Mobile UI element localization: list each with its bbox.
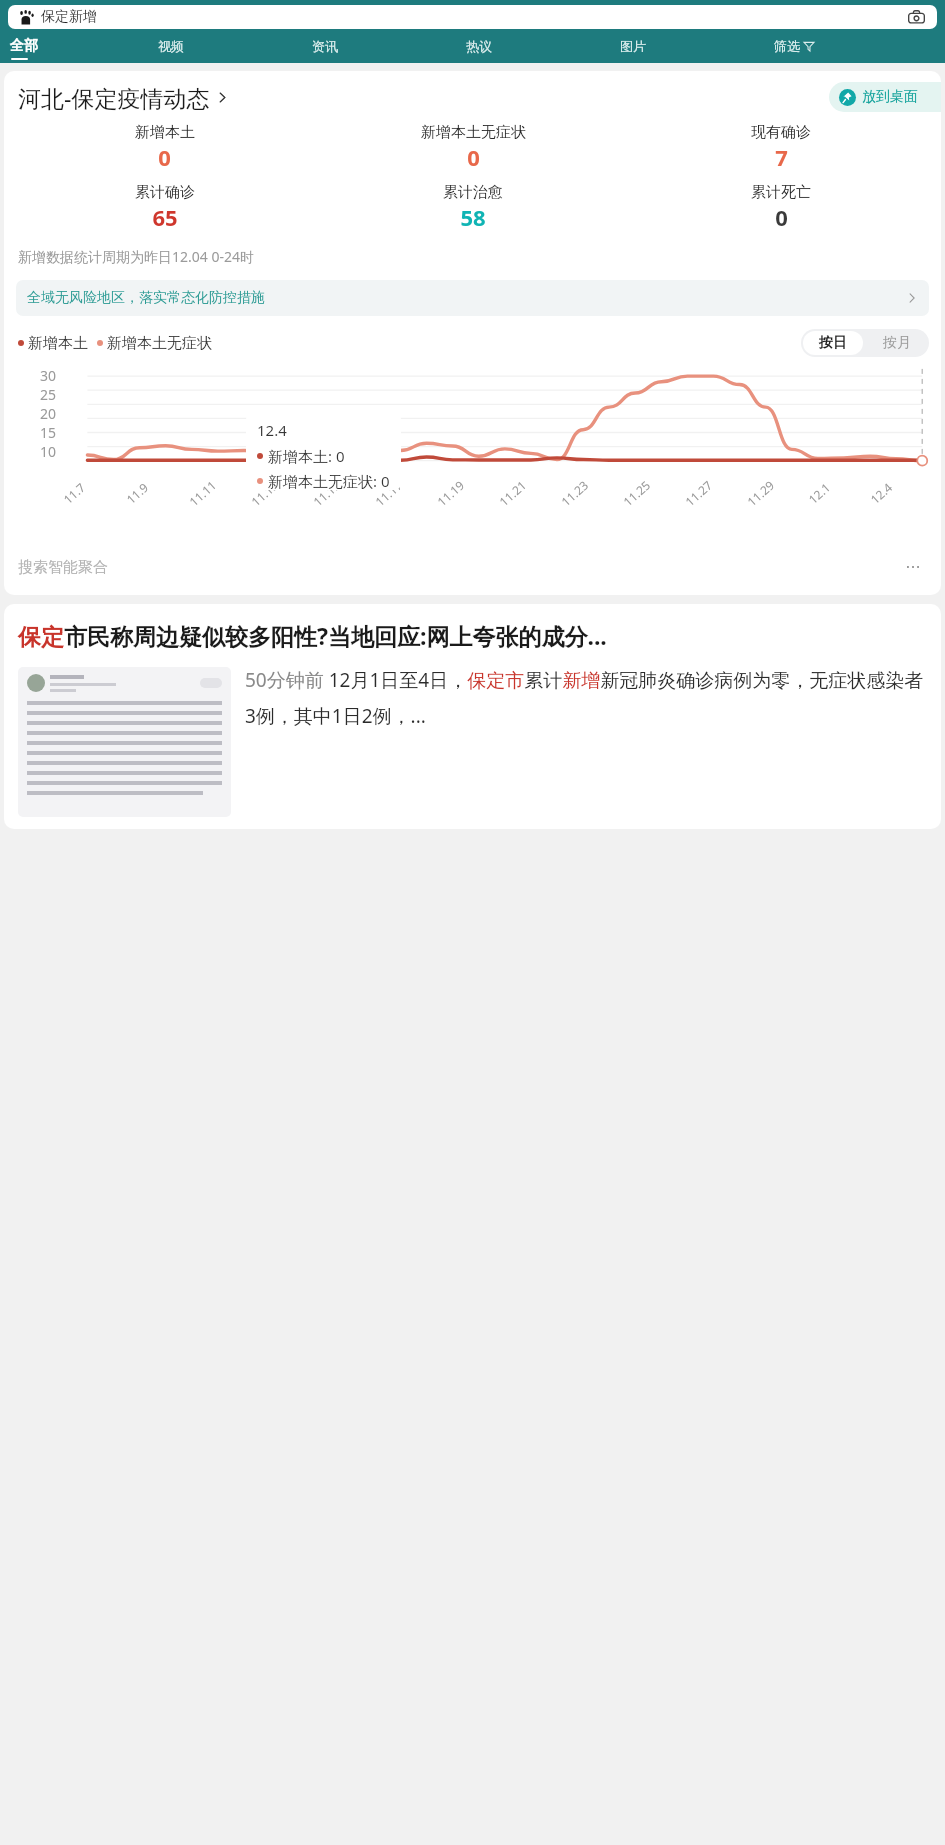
staticText: 58	[460, 202, 486, 232]
staticText: 全部	[10, 37, 38, 55]
button[interactable]: 图片	[620, 36, 774, 55]
staticText: 0	[467, 142, 480, 172]
staticText: 11.21	[496, 477, 529, 509]
staticText: 0	[775, 202, 788, 232]
staticText: 保定新增	[41, 8, 97, 26]
button[interactable]: More options	[901, 555, 925, 579]
button[interactable]: 保定市民称周边疑似较多阳性?当地回应:网上夸张的成分...	[4, 604, 941, 829]
staticText: 筛选	[774, 38, 800, 54]
staticText: 11.17	[372, 477, 405, 509]
button[interactable]: 全部	[10, 36, 158, 55]
button[interactable]: 河北-保定疫情动态	[18, 82, 229, 113]
staticText: 按日	[819, 334, 847, 352]
staticText: 新增本土	[135, 123, 195, 142]
staticText: 11.19	[434, 477, 467, 509]
staticText: 新增本土无症状	[421, 123, 526, 142]
staticText: 12.4	[867, 479, 895, 507]
staticText: 7	[775, 142, 788, 172]
staticText: 11.11	[186, 477, 219, 509]
staticText: 20	[24, 404, 56, 423]
staticText: 视频	[158, 38, 184, 54]
staticText: 新增本土无症状	[107, 334, 212, 353]
staticText: 累计死亡	[751, 183, 811, 202]
button[interactable]: 保定新增	[8, 5, 937, 29]
staticText: 新增本土: 0	[268, 446, 345, 466]
staticText: 30	[24, 366, 56, 385]
staticText: 15	[24, 423, 56, 442]
button[interactable]: Camera search	[906, 7, 926, 27]
staticText: 累计确诊	[135, 183, 195, 202]
staticText: 热议	[466, 38, 492, 54]
staticText: 放到桌面	[862, 88, 918, 106]
button[interactable]: 按日	[803, 331, 863, 355]
staticText: 11.9	[123, 479, 151, 507]
staticText: 11.15	[310, 477, 343, 509]
staticText: 25	[24, 385, 56, 404]
staticText: 10	[24, 442, 56, 461]
staticText: 12.4	[257, 420, 287, 440]
staticText: 资讯	[312, 38, 338, 54]
staticText: 搜索智能聚合	[18, 558, 108, 577]
staticText: 图片	[620, 38, 646, 54]
staticText: 11.25	[620, 477, 653, 509]
staticText: 11.7	[60, 479, 88, 507]
staticText: 50分钟前 12月1日至4日，保定市累计新增新冠肺炎确诊病例为零，无症状感染者3…	[245, 667, 927, 728]
button[interactable]: 放到桌面	[829, 82, 941, 112]
staticText: 累计治愈	[443, 183, 503, 202]
staticText: 现有确诊	[751, 123, 811, 142]
staticText: 全域无风险地区，落实常态化防控措施	[27, 289, 265, 307]
staticText: 保定市民称周边疑似较多阳性?当地回应:网上夸张的成分...	[18, 620, 607, 651]
staticText: 新增本土无症状: 0	[268, 471, 390, 490]
staticText: 11.29	[744, 477, 777, 509]
button[interactable]: 按月	[865, 329, 929, 357]
staticText: 65	[152, 202, 178, 232]
button[interactable]: 热议	[466, 36, 620, 55]
button[interactable]: 筛选	[774, 36, 936, 55]
staticText: 11.27	[682, 477, 715, 509]
staticText: 新增本土	[28, 334, 88, 353]
staticText: 河北-保定疫情动态	[18, 82, 210, 113]
button[interactable]: 资讯	[312, 36, 466, 55]
staticText: 11.13	[248, 477, 281, 509]
button[interactable]: 全域无风险地区，落实常态化防控措施	[16, 280, 929, 316]
staticText: 0	[158, 142, 171, 172]
staticText: 按月	[883, 334, 911, 352]
button[interactable]: 视频	[158, 36, 312, 55]
staticText: 新增数据统计周期为昨日12.04 0-24时	[18, 247, 254, 266]
staticText: 12.1	[805, 479, 833, 507]
staticText: 11.23	[558, 477, 591, 509]
